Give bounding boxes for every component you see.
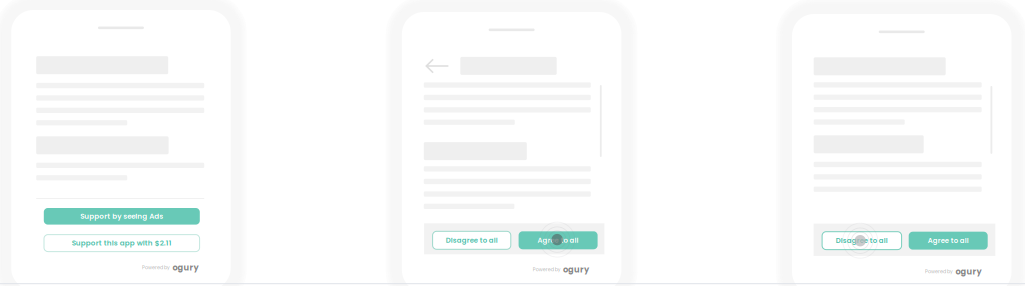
staticText: Support by seeing Ads	[80, 211, 163, 221]
staticText: Agree to all	[538, 235, 579, 245]
button[interactable]: Support by seeing Ads	[44, 208, 200, 225]
button[interactable]: Disagree to all	[433, 231, 511, 249]
staticText: Disagree to all	[836, 236, 888, 245]
staticText: Agree to all	[928, 236, 969, 245]
staticText: ogury	[563, 264, 589, 275]
staticText: Powered by	[142, 264, 170, 271]
button[interactable]: Agree to all	[909, 232, 988, 250]
staticText: Powered by	[533, 266, 561, 273]
button[interactable]: Disagree to all	[822, 232, 902, 250]
button[interactable]: Back	[425, 58, 450, 74]
staticText: ogury	[955, 266, 981, 277]
staticText: Powered by	[925, 268, 953, 275]
staticText: Support this app with $2.11	[72, 238, 172, 248]
staticText: ogury	[172, 262, 198, 273]
staticText: Disagree to all	[446, 235, 498, 245]
button[interactable]: Support this app with $2.11	[44, 235, 200, 252]
button[interactable]: Agree to all	[519, 231, 598, 249]
